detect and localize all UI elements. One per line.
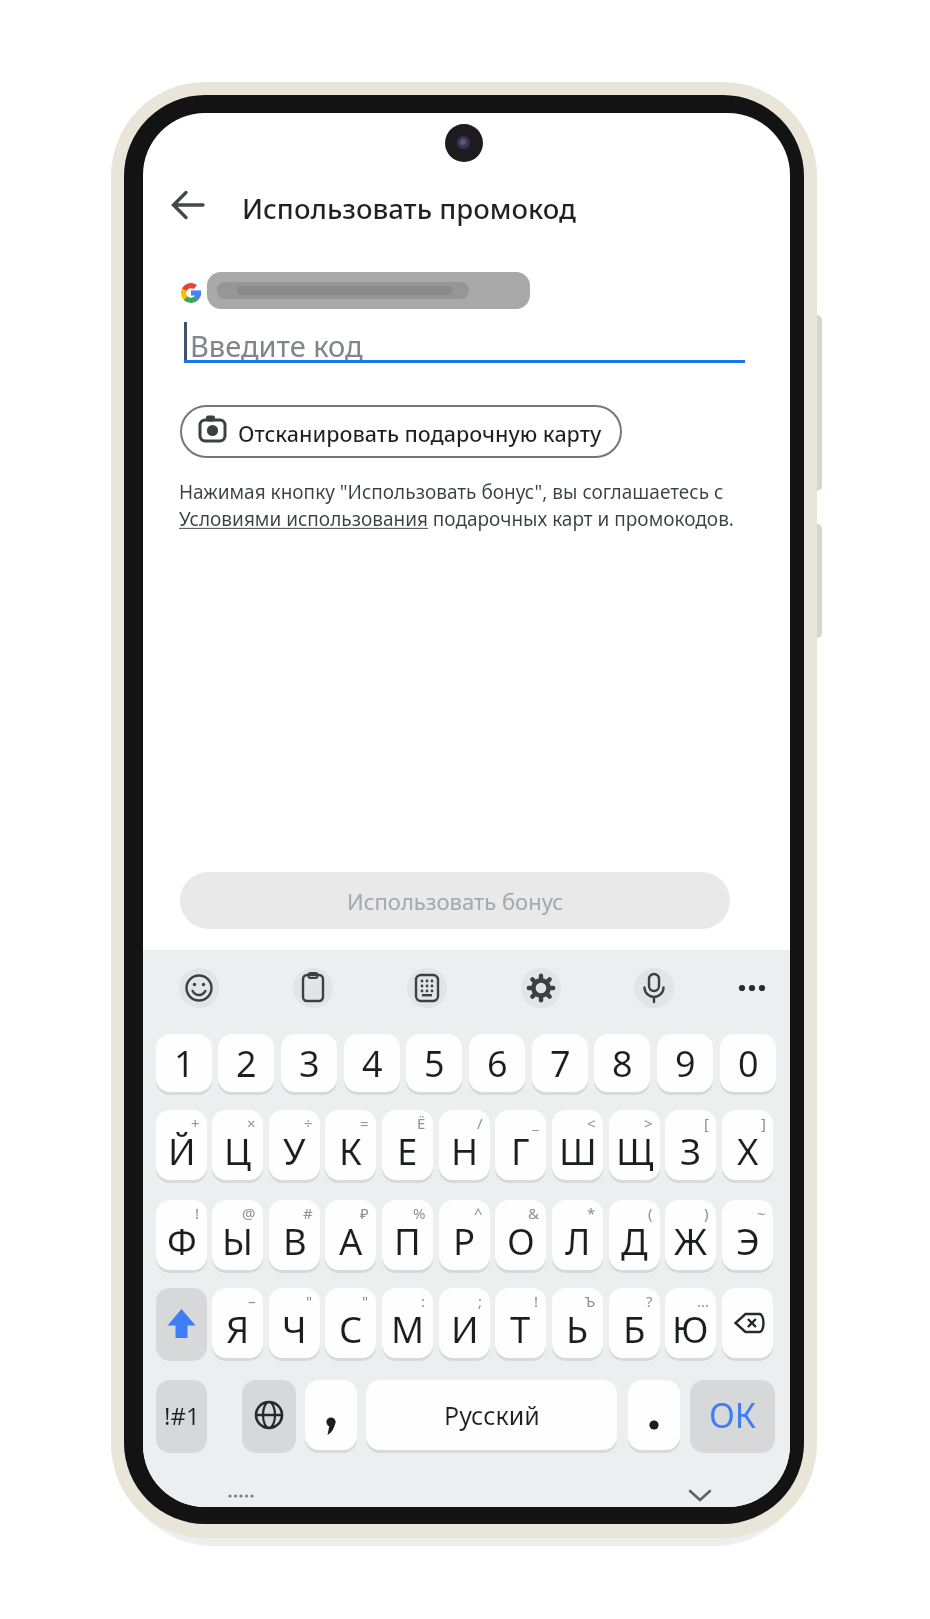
staticText: 9	[675, 1039, 696, 1088]
staticText: _	[532, 1113, 539, 1133]
staticText: …	[697, 1291, 709, 1311]
button[interactable]: 0	[720, 1034, 776, 1092]
staticText: &	[528, 1203, 539, 1223]
button[interactable]: 8	[594, 1034, 650, 1092]
staticText: ×	[247, 1113, 256, 1133]
button[interactable]: 7	[532, 1034, 588, 1092]
button[interactable]: И	[439, 1288, 490, 1358]
button[interactable]: Е	[382, 1110, 433, 1180]
button[interactable]: Э	[722, 1200, 773, 1270]
button[interactable]: Русский	[366, 1380, 617, 1450]
button[interactable]: В	[269, 1200, 320, 1270]
button[interactable]: Т	[495, 1288, 546, 1358]
staticText: Г	[511, 1126, 530, 1176]
staticText: К	[339, 1126, 362, 1176]
staticText: Ы	[222, 1216, 253, 1266]
button[interactable]: П	[382, 1200, 433, 1270]
button[interactable]: Д	[609, 1200, 660, 1270]
staticText: Ь	[566, 1304, 589, 1354]
staticText: Ё	[417, 1113, 426, 1133]
staticText: 4	[362, 1039, 383, 1088]
staticText: %	[413, 1203, 426, 1223]
button[interactable]	[521, 968, 561, 1008]
staticText: У	[283, 1126, 306, 1176]
button[interactable]: У	[269, 1110, 320, 1180]
staticText: !	[534, 1291, 539, 1311]
staticText: ^	[474, 1203, 483, 1223]
button[interactable]: З	[665, 1110, 716, 1180]
staticText: Русский	[444, 1398, 540, 1432]
staticText: Использовать бонус	[347, 886, 564, 916]
button[interactable]	[242, 1380, 296, 1450]
button[interactable]: Б	[609, 1288, 660, 1358]
staticText: Ж	[674, 1216, 708, 1266]
button[interactable]: Ж	[665, 1200, 716, 1270]
staticText: З	[680, 1126, 702, 1176]
button[interactable]: 5	[406, 1034, 462, 1092]
button[interactable]: Г	[495, 1110, 546, 1180]
button[interactable]: 3	[281, 1034, 337, 1092]
staticText: П	[394, 1216, 421, 1266]
button[interactable]: Ч	[269, 1288, 320, 1358]
button[interactable]	[179, 968, 219, 1008]
staticText: Н	[451, 1126, 479, 1176]
staticText: Е	[397, 1126, 418, 1176]
staticText: :	[421, 1291, 426, 1311]
button[interactable]	[305, 1380, 357, 1450]
staticText: ₽	[360, 1203, 369, 1223]
button[interactable]: ОК	[690, 1380, 775, 1450]
button[interactable]: Я	[212, 1288, 263, 1358]
staticText: ОК	[709, 1392, 757, 1438]
button[interactable]: 1	[156, 1034, 212, 1092]
button[interactable]: А	[325, 1200, 376, 1270]
button[interactable]	[165, 183, 211, 229]
staticText: М	[391, 1304, 425, 1354]
button[interactable]: Ю	[665, 1288, 716, 1358]
button[interactable]	[293, 968, 333, 1008]
staticText: )	[704, 1203, 709, 1223]
staticText: "	[362, 1291, 369, 1311]
button[interactable]	[156, 1288, 207, 1358]
button[interactable]: Х	[722, 1110, 773, 1180]
staticText: В	[283, 1216, 307, 1266]
button[interactable]: Й	[156, 1110, 207, 1180]
button[interactable]: К	[325, 1110, 376, 1180]
staticText: Д	[621, 1216, 648, 1266]
staticText: 3	[299, 1039, 320, 1088]
button[interactable]: Ы	[212, 1200, 263, 1270]
button[interactable]: 6	[469, 1034, 525, 1092]
staticText: И	[451, 1304, 479, 1354]
button[interactable]: 4	[344, 1034, 400, 1092]
staticText: С	[339, 1304, 363, 1354]
button[interactable]: !#1	[156, 1380, 207, 1450]
button[interactable]: Нажимая кнопку "Использовать бонус", вы …	[179, 479, 759, 532]
staticText: Ч	[282, 1304, 307, 1354]
staticText: 5	[424, 1039, 445, 1088]
button[interactable]: Л	[552, 1200, 603, 1270]
staticText: 6	[487, 1039, 508, 1088]
button[interactable]: Ь	[552, 1288, 603, 1358]
button[interactable]: Ш	[552, 1110, 603, 1180]
staticText: ~	[757, 1203, 766, 1223]
staticText: 0	[738, 1039, 759, 1088]
button[interactable]: Отсканировать подарочную карту	[180, 405, 622, 458]
button[interactable]: Ф	[156, 1200, 207, 1270]
button[interactable]	[722, 1288, 773, 1358]
button[interactable]: О	[495, 1200, 546, 1270]
button[interactable]: Ц	[212, 1110, 263, 1180]
button[interactable]: Н	[439, 1110, 490, 1180]
button[interactable]: М	[382, 1288, 433, 1358]
button[interactable]	[407, 968, 447, 1008]
button[interactable]: 9	[657, 1034, 713, 1092]
staticText: А	[339, 1216, 363, 1266]
button[interactable]: Щ	[609, 1110, 660, 1180]
staticText: 7	[550, 1039, 571, 1088]
button[interactable]	[628, 1380, 680, 1450]
staticText: Отсканировать подарочную карту	[238, 419, 602, 448]
button[interactable]: Использовать бонус	[180, 872, 730, 929]
button[interactable]: 2	[218, 1034, 274, 1092]
staticText: (	[648, 1203, 653, 1223]
button[interactable]: С	[325, 1288, 376, 1358]
button[interactable]: Р	[439, 1200, 490, 1270]
button[interactable]	[634, 968, 674, 1008]
